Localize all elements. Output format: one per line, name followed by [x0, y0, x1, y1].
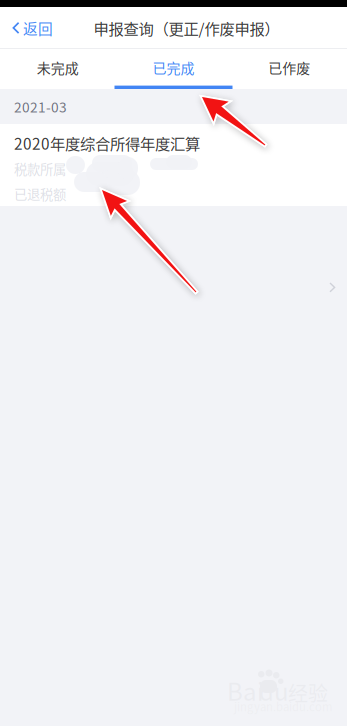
button[interactable]: 已作废 — [231, 49, 347, 89]
staticText: 已退税额 — [14, 184, 66, 204]
button[interactable]: 已完成 — [116, 49, 231, 89]
staticText: du — [259, 673, 289, 708]
staticText: 2021-03 — [14, 97, 67, 116]
staticText: 2020年度综合所得年度汇算 — [14, 132, 200, 154]
staticText: 未完成 — [37, 57, 79, 78]
staticText: Bai — [227, 673, 264, 708]
staticText: 返回 — [23, 17, 53, 39]
button[interactable]: 2020年度综合所得年度汇算 — [0, 124, 347, 206]
staticText: 已完成 — [152, 57, 194, 78]
staticText: 已作废 — [268, 57, 310, 78]
button[interactable]: 返回 — [0, 7, 65, 49]
staticText: 税款所属 — [14, 159, 66, 178]
button[interactable]: 未完成 — [0, 49, 116, 89]
staticText: 申报查询（更正/作废申报） — [93, 17, 279, 39]
